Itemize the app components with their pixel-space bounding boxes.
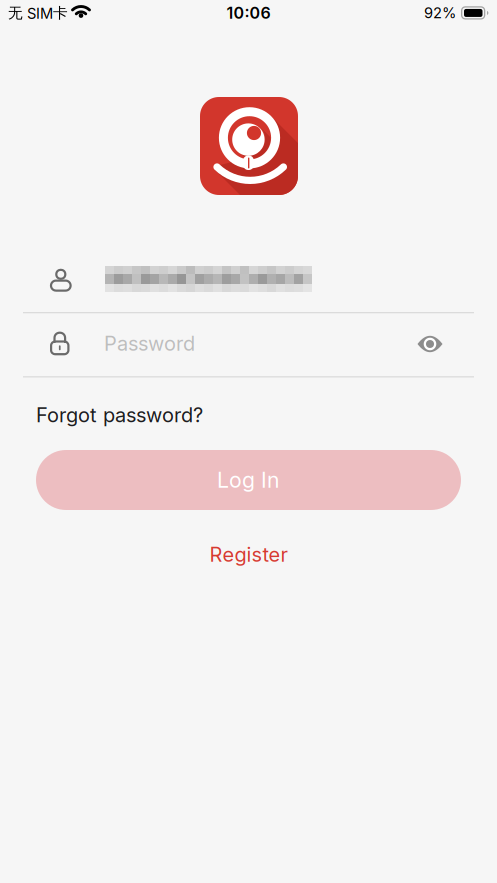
staticText: 无 SIM卡 xyxy=(8,4,68,22)
staticText: 92% xyxy=(424,4,456,22)
button[interactable]: Show password xyxy=(417,336,443,352)
button[interactable]: Log In xyxy=(36,450,461,510)
button[interactable]: Forgot password? xyxy=(36,401,203,429)
staticText: Log In xyxy=(217,467,280,493)
staticText: 10:06 xyxy=(226,4,270,22)
staticText: Forgot password? xyxy=(36,403,203,427)
staticText: Password xyxy=(104,332,195,355)
button[interactable]: Register xyxy=(209,540,287,568)
staticText: Register xyxy=(209,543,287,566)
